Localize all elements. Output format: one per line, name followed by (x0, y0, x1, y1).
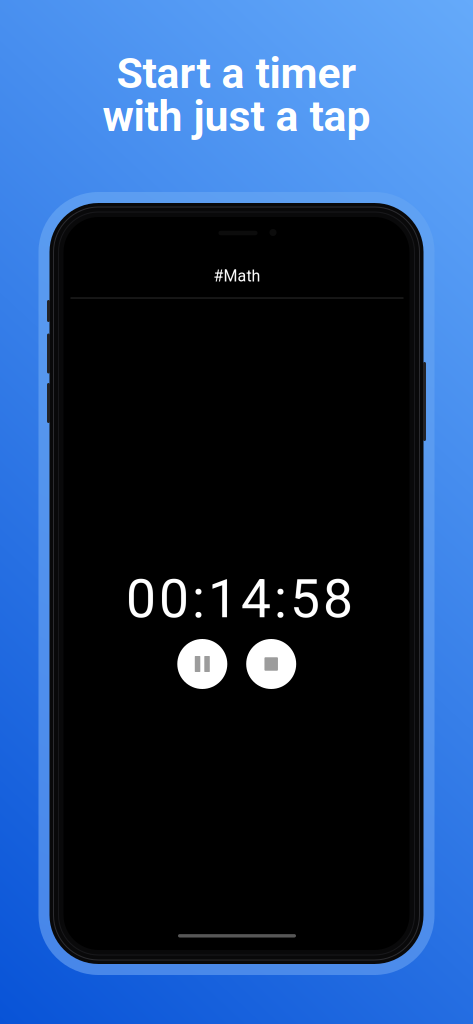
staticText: with just a tap (102, 91, 370, 141)
button[interactable]: Stop timer (246, 639, 296, 689)
staticText: Start a timer (116, 48, 356, 98)
button[interactable]: Pause timer (177, 639, 227, 689)
staticText: #Math (213, 267, 260, 285)
staticText: 00:14:58 (126, 568, 353, 630)
